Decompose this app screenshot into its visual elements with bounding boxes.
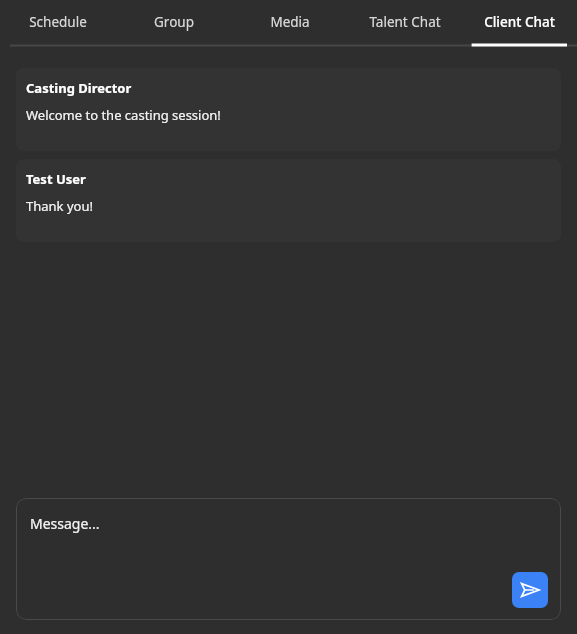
staticText: Welcome to the casting session! (26, 106, 221, 124)
button[interactable]: Talent Chat (347, 0, 462, 44)
staticText: Schedule (29, 13, 87, 31)
button[interactable]: Send (512, 572, 548, 608)
button[interactable]: Media (232, 0, 347, 44)
button[interactable]: Client Chat (462, 0, 577, 44)
staticText: Casting Director (26, 79, 132, 97)
staticText: Message... (30, 514, 100, 533)
button[interactable]: Group (116, 0, 232, 44)
staticText: Media (270, 13, 310, 31)
button[interactable]: Test User (16, 159, 561, 242)
staticText: Client Chat (484, 13, 555, 31)
button[interactable]: Schedule (0, 0, 116, 44)
staticText: Talent Chat (369, 13, 441, 31)
staticText: Test User (26, 170, 86, 188)
staticText: Group (154, 13, 194, 31)
staticText: Thank you! (26, 197, 93, 215)
button[interactable]: Casting Director (16, 68, 561, 151)
button[interactable]: Message... (16, 498, 561, 620)
